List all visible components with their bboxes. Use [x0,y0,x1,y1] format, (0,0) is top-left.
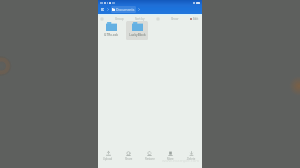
button[interactable]: Upload [98,145,118,168]
staticText: Restore [145,157,155,161]
button[interactable]: GTRx.ock [100,21,122,40]
staticText: Edit [193,17,199,21]
staticText: Share [125,157,133,161]
button[interactable]: Restore [139,145,160,168]
staticText: Documents [116,7,135,12]
button[interactable]: Delete [181,145,202,168]
button[interactable]: Share [118,145,139,168]
button[interactable]: More [160,145,181,168]
staticText: Delete [187,157,196,161]
staticText: Upload [103,157,113,161]
button[interactable]: Select all [100,17,104,21]
staticText: LuckyBlock [129,33,146,37]
staticText: More [167,157,174,161]
button[interactable]: Show [171,17,179,21]
button[interactable]: Documents [111,6,136,13]
button[interactable]: Group [115,17,124,21]
button[interactable]: Menu [100,7,105,12]
button[interactable]: Sort by [135,17,145,21]
staticText: www.example.com [162,158,200,164]
button[interactable]: Grid view [156,17,160,21]
button[interactable]: Edit [190,17,199,21]
button[interactable]: LuckyBlock [126,21,148,40]
staticText: GTRx.ock [104,33,118,37]
